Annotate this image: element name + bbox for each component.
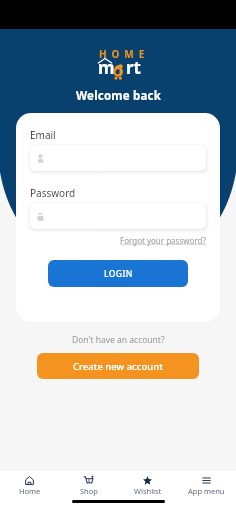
staticText: Create new account xyxy=(73,360,163,373)
staticText: Wishlist xyxy=(134,486,162,496)
staticText: Email xyxy=(30,128,56,142)
staticText: LOGIN xyxy=(104,268,133,280)
button[interactable]: Home xyxy=(0,471,59,496)
button[interactable]: Shop xyxy=(59,471,118,496)
button[interactable]: Forgot your password? xyxy=(120,235,206,246)
staticText: m xyxy=(98,56,115,79)
button[interactable] xyxy=(30,145,206,171)
button[interactable]: Create new account xyxy=(37,353,199,379)
button[interactable] xyxy=(30,203,206,229)
staticText: rt xyxy=(126,56,141,79)
button[interactable]: LOGIN xyxy=(48,260,188,287)
staticText: App menu xyxy=(188,486,225,496)
staticText: Shop xyxy=(80,486,98,496)
button[interactable]: Wishlist xyxy=(118,471,177,496)
staticText: Home xyxy=(19,486,41,496)
staticText: Welcome back xyxy=(76,88,161,104)
button[interactable]: App menu xyxy=(177,471,236,496)
staticText: HOME xyxy=(99,47,150,61)
staticText: Password xyxy=(30,186,76,200)
staticText: Don't have an account? xyxy=(72,334,165,346)
